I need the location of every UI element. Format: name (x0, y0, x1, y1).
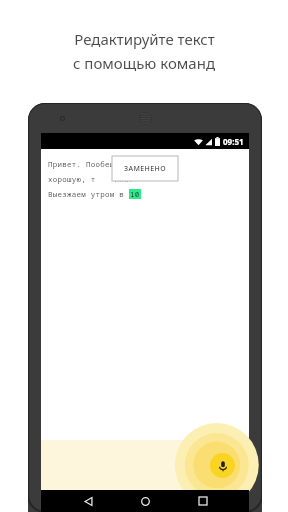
button[interactable]: Голосовой ввод (210, 453, 235, 478)
button[interactable]: Обзор (192, 490, 214, 512)
staticText: ЗАМЕНЕНО (124, 164, 166, 174)
staticText: 10 (130, 189, 140, 199)
button[interactable]: Главный экран (134, 490, 156, 512)
staticText: с помощью команд (73, 53, 215, 73)
staticText: Редактируйте текст (74, 29, 215, 49)
button[interactable]: ЗАМЕНЕНО (112, 156, 178, 181)
staticText: Привет. Пообещают (48, 159, 129, 169)
staticText: хорошую, т иле. (48, 174, 134, 184)
button[interactable]: Назад (77, 490, 99, 512)
staticText: 09:51 (223, 136, 244, 147)
staticText: Выезжаем утром в (48, 189, 129, 199)
